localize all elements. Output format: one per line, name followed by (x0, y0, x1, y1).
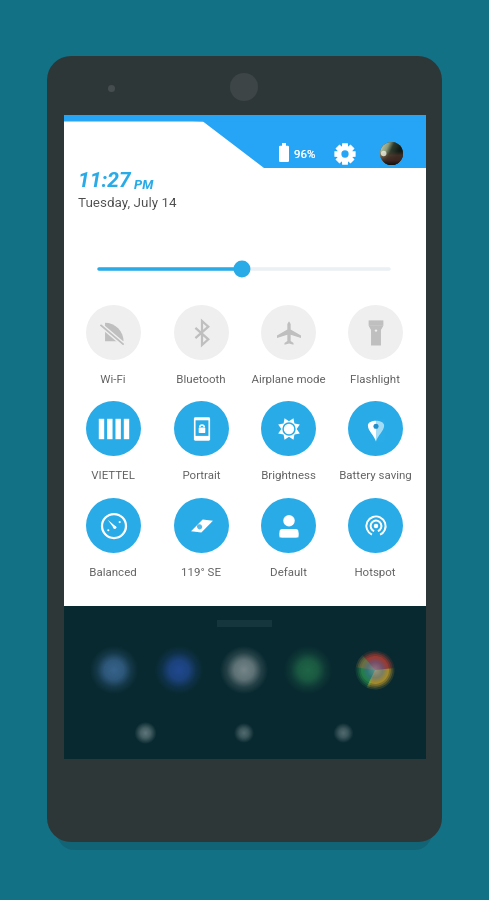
button[interactable]: 119° SE (156, 498, 246, 578)
staticText: Flashlight (350, 372, 400, 385)
staticText: Wi-Fi (100, 372, 126, 385)
staticText: 96% (294, 147, 316, 160)
button[interactable]: Settings (334, 143, 356, 165)
staticText: Hotspot (354, 565, 396, 578)
button[interactable]: Brightness (243, 401, 333, 481)
staticText: Balanced (89, 565, 137, 578)
staticText: 11:27 (78, 168, 131, 193)
staticText: Airplane mode (251, 372, 326, 385)
staticText: 119° SE (181, 565, 221, 578)
button[interactable]: Wi-Fi (68, 305, 158, 385)
staticText: Tuesday, July 14 (78, 194, 177, 210)
staticText: Portrait (182, 468, 221, 481)
button[interactable]: User profile (380, 142, 403, 165)
button[interactable]: Portrait (156, 401, 246, 481)
button[interactable]: Flashlight (330, 305, 420, 385)
button[interactable]: Brightness slider (91, 257, 397, 281)
button[interactable]: VIETTEL (68, 401, 158, 481)
staticText: VIETTEL (91, 468, 135, 481)
button[interactable]: Bluetooth (156, 305, 246, 385)
button[interactable]: Default (243, 498, 333, 578)
staticText: PM (134, 177, 154, 192)
button[interactable]: Battery saving (330, 401, 420, 481)
staticText: Bluetooth (176, 372, 226, 385)
staticText: Brightness (261, 468, 316, 481)
button[interactable]: Airplane mode (243, 305, 333, 385)
button[interactable]: Hotspot (330, 498, 420, 578)
staticText: Battery saving (339, 468, 412, 481)
button[interactable]: Balanced (68, 498, 158, 578)
staticText: Default (270, 565, 307, 578)
